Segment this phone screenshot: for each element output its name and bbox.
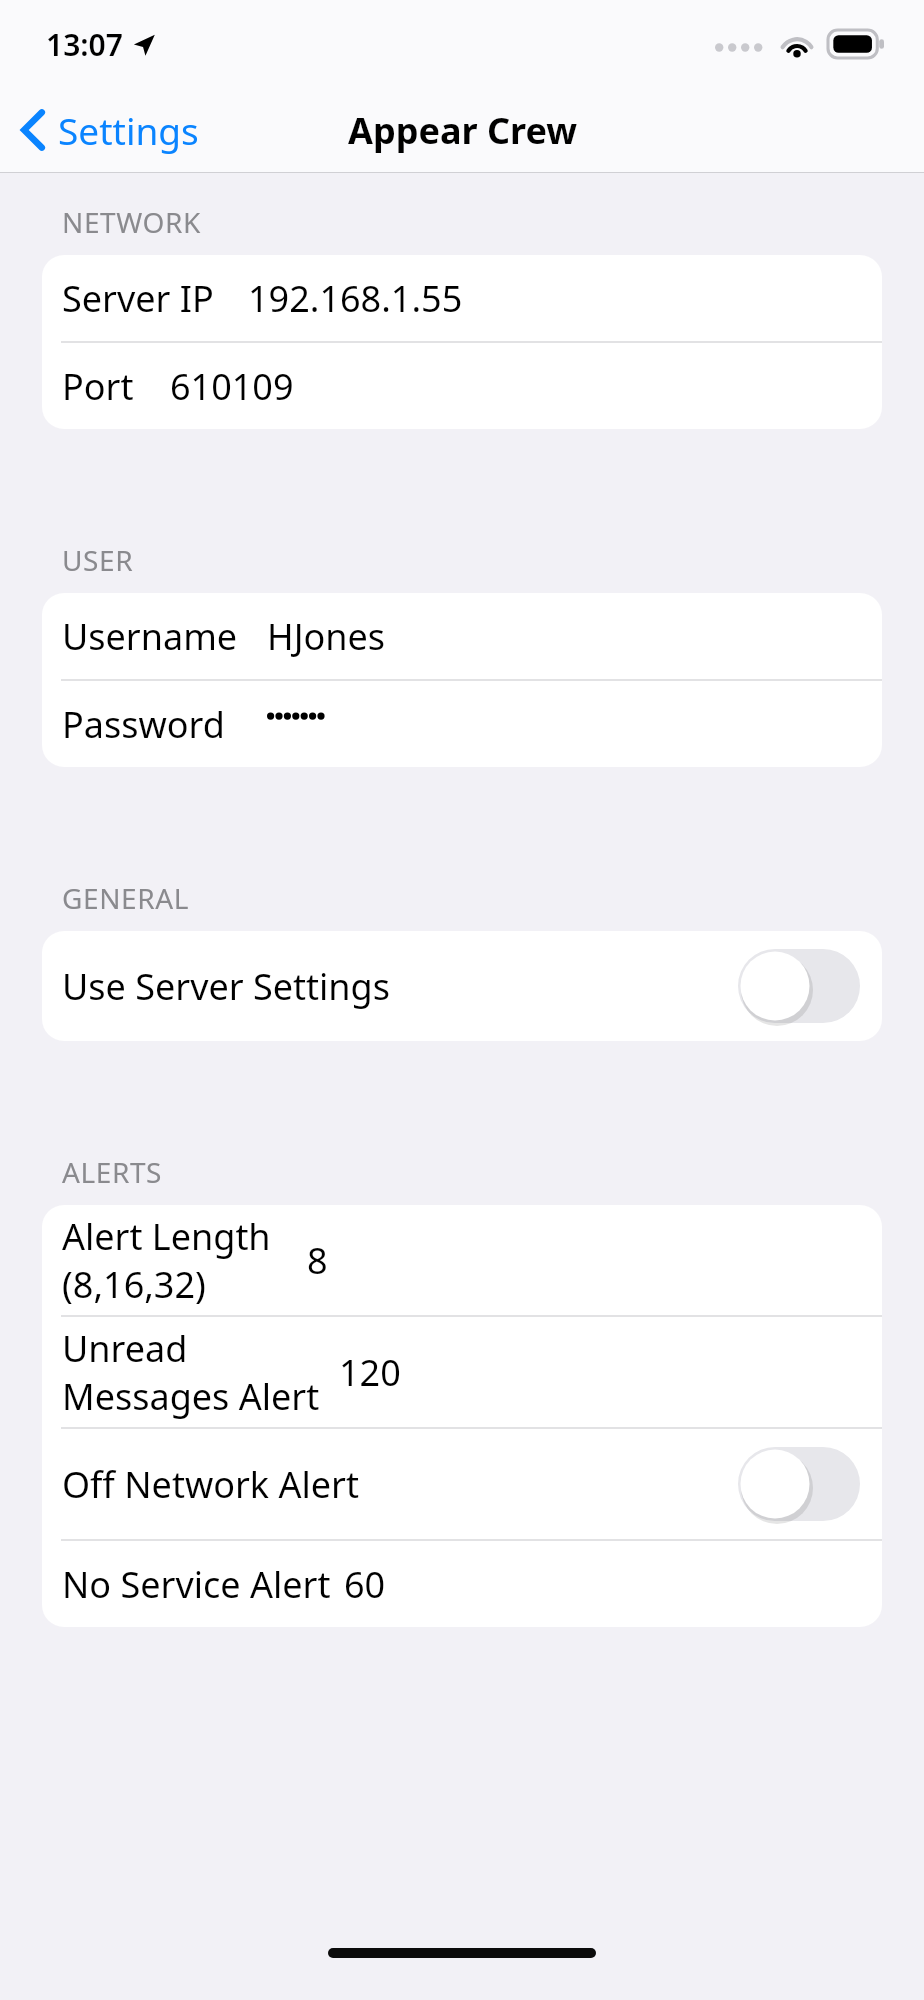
staticText: Appear Crew xyxy=(348,106,577,155)
button[interactable]: Password xyxy=(42,681,882,767)
staticText: Username xyxy=(62,612,267,661)
button[interactable]: Use Server Settings xyxy=(42,931,882,1041)
staticText: Alert Length (8,16,32) xyxy=(62,1212,307,1308)
staticText: GENERAL xyxy=(62,879,189,917)
staticText: 60 xyxy=(344,1560,386,1609)
staticText: NETWORK xyxy=(62,203,201,241)
button[interactable]: No Service Alert xyxy=(42,1541,882,1627)
staticText: ALERTS xyxy=(62,1153,163,1191)
button[interactable]: Server IP xyxy=(42,255,882,341)
button[interactable]: Unread Messages Alert xyxy=(42,1317,882,1427)
staticText: Password xyxy=(62,700,267,749)
button[interactable]: Toggle xyxy=(738,949,860,1023)
staticText: 8 xyxy=(307,1236,328,1285)
staticText: 13:07 xyxy=(46,24,123,65)
staticText: 610109 xyxy=(170,362,294,411)
staticText: Settings xyxy=(58,105,199,155)
button[interactable]: Username xyxy=(42,593,882,679)
button[interactable]: Port xyxy=(42,343,882,429)
staticText: Server IP xyxy=(62,274,248,323)
button[interactable]: Off Network Alert xyxy=(42,1429,882,1539)
staticText: Unread Messages Alert xyxy=(62,1324,339,1420)
staticText: Off Network Alert xyxy=(62,1460,359,1509)
staticText: 192.168.1.55 xyxy=(248,274,463,323)
staticText: 120 xyxy=(339,1348,401,1397)
staticText: Port xyxy=(62,362,170,411)
button[interactable]: Settings xyxy=(0,99,213,161)
staticText: Use Server Settings xyxy=(62,962,390,1011)
staticText: USER xyxy=(62,541,134,579)
staticText: HJones xyxy=(267,612,386,661)
button[interactable]: Toggle xyxy=(738,1447,860,1521)
button[interactable]: Alert Length (8,16,32) xyxy=(42,1205,882,1315)
staticText: No Service Alert xyxy=(62,1560,344,1609)
